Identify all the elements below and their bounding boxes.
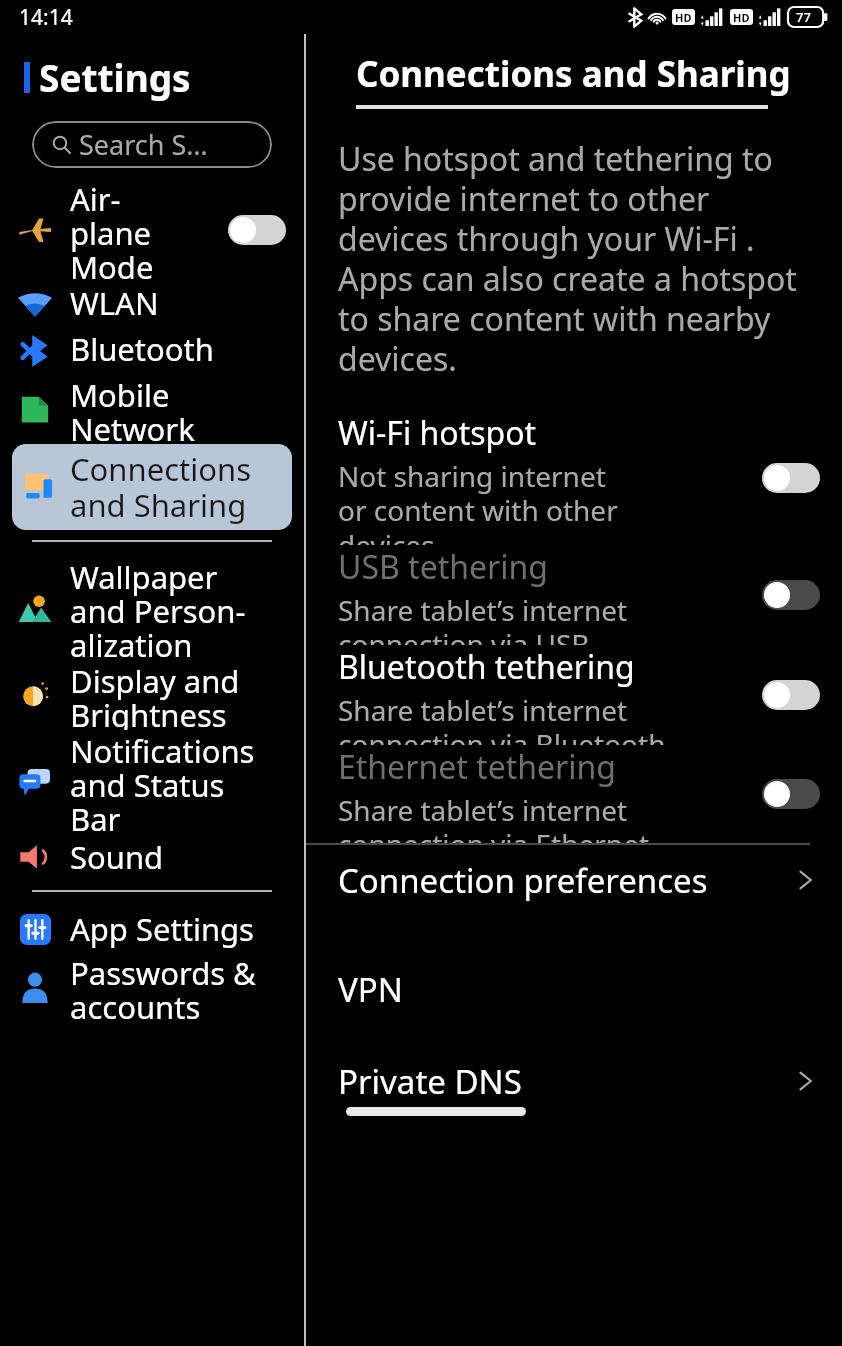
staticText: Share tablet’s internet connection via E… <box>338 791 650 843</box>
button[interactable]: Passwords & accounts <box>0 952 304 1022</box>
button[interactable]: Toggle <box>228 215 286 245</box>
button[interactable]: Toggle <box>762 580 820 610</box>
button[interactable]: Bluetooth tethering <box>338 645 842 745</box>
staticText: Connections and Sharing <box>356 50 791 98</box>
staticText: Mobile Network <box>70 374 195 444</box>
button[interactable]: App Settings <box>0 906 304 952</box>
button[interactable]: Private DNS <box>338 1059 842 1103</box>
button[interactable]: Display and Brightness <box>0 660 304 730</box>
staticText: Air- plane Mode <box>70 178 154 282</box>
staticText: 14:14 <box>19 3 73 32</box>
staticText: Share tablet’s internet connection via U… <box>338 591 628 645</box>
staticText: Wallpaper and Person- alization <box>70 556 246 660</box>
button[interactable]: Connection preferences <box>338 845 842 915</box>
button[interactable]: VPN <box>338 967 842 1011</box>
staticText: Settings <box>39 52 191 102</box>
staticText: Wi-Fi hotspot <box>338 411 537 455</box>
staticText: Search S… <box>79 126 208 163</box>
staticText: 77 <box>796 8 811 26</box>
button[interactable]: Wi-Fi hotspot <box>338 411 842 545</box>
staticText: Display and Brightness <box>70 660 240 730</box>
staticText: Private DNS <box>338 1059 798 1103</box>
button[interactable]: Wallpaper and Person- alization <box>0 556 304 660</box>
button[interactable]: Bluetooth <box>0 328 304 374</box>
button[interactable]: WLAN <box>0 282 304 328</box>
staticText: HD <box>675 10 692 25</box>
button[interactable]: Sound <box>0 834 304 880</box>
button[interactable]: Air- plane Mode <box>0 178 304 282</box>
staticText: VPN <box>338 967 842 1011</box>
staticText: Use hotspot and tethering to provide int… <box>338 137 818 381</box>
staticText: Not sharing internet or content with oth… <box>338 457 618 545</box>
staticText: Share tablet’s internet connection via B… <box>338 691 666 745</box>
button[interactable]: Toggle <box>762 680 820 710</box>
button[interactable]: Connections and Sharing <box>12 444 292 530</box>
button[interactable]: Ethernet tethering <box>338 745 842 843</box>
staticText: Connections and Sharing <box>70 448 251 526</box>
button[interactable]: Toggle <box>762 779 820 809</box>
staticText: Notifications and Status Bar <box>70 730 255 834</box>
button[interactable]: Notifications and Status Bar <box>0 730 304 834</box>
staticText: Bluetooth <box>70 328 214 370</box>
staticText: Passwords & accounts <box>70 952 256 1022</box>
staticText: Sound <box>70 836 164 878</box>
button[interactable]: Toggle <box>762 463 820 493</box>
button[interactable]: Mobile Network <box>0 374 304 444</box>
staticText: Bluetooth tethering <box>338 645 635 689</box>
staticText: HD <box>733 10 750 25</box>
button[interactable]: USB tethering <box>338 545 842 645</box>
staticText: USB tethering <box>338 545 548 589</box>
staticText: WLAN <box>70 282 159 324</box>
button[interactable]: Search S… <box>32 121 272 168</box>
staticText: Ethernet tethering <box>338 745 616 789</box>
staticText: App Settings <box>70 908 254 950</box>
staticText: Connection preferences <box>338 858 798 903</box>
